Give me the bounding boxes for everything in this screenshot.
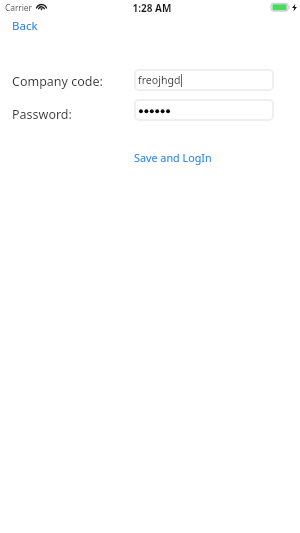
staticText: Password: <box>12 106 72 123</box>
other: Password, 6 characters entered <box>139 105 171 115</box>
staticText: 1:28 AM <box>2 1 300 15</box>
button[interactable]: Password, 6 characters entered <box>134 99 274 121</box>
button[interactable]: freojhgd <box>134 69 274 91</box>
staticText: freojhgd <box>138 73 181 87</box>
staticText: Company code: <box>12 73 103 90</box>
button[interactable]: Back <box>8 14 44 38</box>
staticText: Carrier <box>5 2 32 14</box>
staticText: Save and LogIn <box>134 150 212 165</box>
other: Battery full, charging <box>271 3 290 12</box>
staticText: Back <box>12 18 38 34</box>
button[interactable]: Save and LogIn <box>130 146 218 170</box>
other: Wi-Fi connected <box>36 3 47 10</box>
